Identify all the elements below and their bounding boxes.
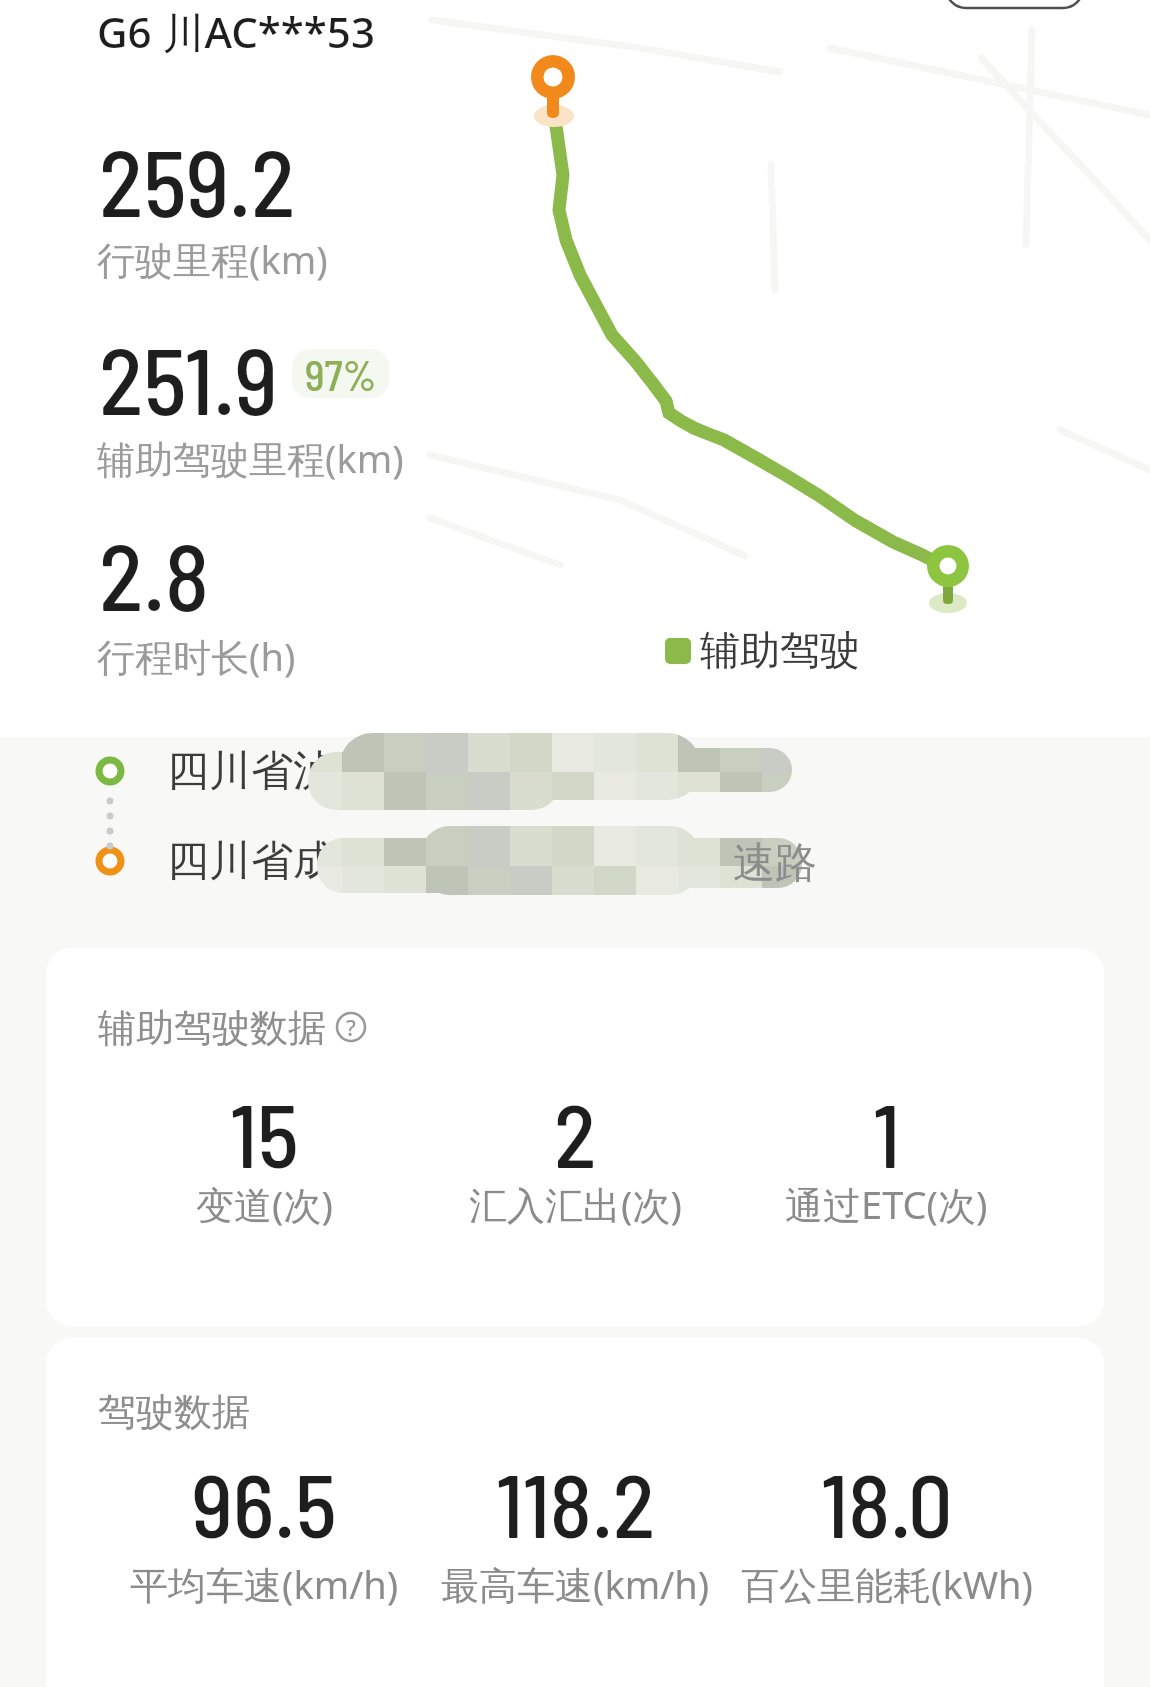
staticText: 四川省成	[167, 835, 335, 888]
staticText: 辅助驾驶数据	[98, 1004, 326, 1052]
staticText: 行程时长(h)	[97, 630, 296, 682]
button[interactable]: 辅助驾驶数据	[46, 948, 1104, 1326]
staticText: 辅助驾驶	[700, 625, 860, 675]
staticText: 平均车速(km/h)	[130, 1558, 399, 1610]
staticText: 1	[873, 1080, 901, 1186]
staticText: 2	[554, 1080, 597, 1186]
staticText: 最高车速(km/h)	[441, 1558, 710, 1610]
staticText: 变道(次)	[196, 1178, 333, 1230]
staticText: 2.8	[99, 519, 210, 629]
staticText: 百公里能耗(kWh)	[741, 1558, 1033, 1610]
staticText: 18.0	[821, 1450, 953, 1556]
button[interactable]: 97%	[292, 349, 389, 398]
staticText: 行驶里程(km)	[97, 233, 328, 285]
staticText: ?	[346, 1012, 356, 1042]
button[interactable]: ?	[334, 1010, 368, 1044]
staticText: 辅助驾驶里程(km)	[97, 432, 404, 484]
staticText: 通过ETC(次)	[785, 1178, 988, 1230]
staticText: 96.5	[192, 1450, 337, 1556]
staticText: 259.2	[99, 125, 296, 235]
staticText: 251.9	[99, 323, 278, 433]
staticText: 15	[230, 1080, 299, 1186]
staticText: 驾驶数据	[98, 1388, 250, 1436]
staticText: 速路	[733, 837, 817, 890]
staticText: G6 川AC***53	[97, 3, 375, 60]
staticText: 118.2	[496, 1450, 656, 1556]
staticText: 四川省泸	[167, 745, 335, 798]
button[interactable]: 驾驶数据	[46, 1338, 1104, 1687]
staticText: 97%	[305, 349, 377, 398]
staticText: 汇入汇出(次)	[469, 1178, 682, 1230]
